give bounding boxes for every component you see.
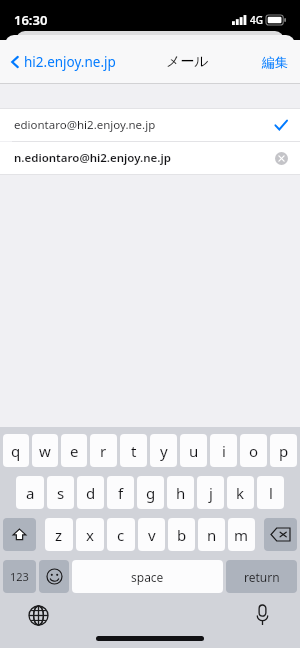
button[interactable]: u: [180, 434, 207, 467]
button[interactable]: t: [120, 434, 147, 467]
button[interactable]: Emoji: [39, 560, 69, 593]
other: Selected: [274, 118, 288, 132]
button[interactable]: i: [210, 434, 237, 467]
staticText: p: [279, 441, 289, 461]
button[interactable]: space: [72, 560, 223, 593]
staticText: u: [189, 441, 199, 461]
staticText: g: [146, 483, 156, 503]
button[interactable]: q: [3, 434, 29, 467]
button[interactable]: y: [150, 434, 177, 467]
button[interactable]: hi2.enjoy.ne.jp: [8, 47, 118, 77]
button[interactable]: Change keyboard language: [24, 601, 52, 629]
button[interactable]: l: [257, 476, 284, 509]
button[interactable]: e: [61, 434, 87, 467]
button[interactable]: d: [77, 476, 104, 509]
button[interactable]: f: [107, 476, 134, 509]
button[interactable]: 123: [3, 560, 36, 593]
staticText: f: [118, 483, 124, 503]
staticText: y: [160, 441, 168, 461]
button[interactable]: Shift: [3, 518, 36, 551]
staticText: n.ediontaro@hi2.enjoy.ne.jp: [14, 150, 171, 166]
staticText: q: [11, 441, 21, 461]
staticText: 編集: [262, 54, 288, 70]
staticText: return: [244, 569, 280, 585]
staticText: j: [209, 483, 213, 503]
button[interactable]: k: [227, 476, 254, 509]
button[interactable]: n.ediontaro@hi2.enjoy.ne.jp: [0, 142, 300, 174]
button[interactable]: v: [138, 518, 165, 551]
button[interactable]: Clear: [275, 152, 288, 165]
staticText: i: [222, 441, 226, 461]
button[interactable]: h: [167, 476, 194, 509]
button[interactable]: Backspace: [264, 518, 297, 551]
staticText: ediontaro@hi2.enjoy.ne.jp: [14, 117, 156, 133]
staticText: d: [86, 483, 96, 503]
button[interactable]: b: [168, 518, 195, 551]
button[interactable]: a: [16, 476, 44, 509]
button[interactable]: m: [228, 518, 255, 551]
staticText: space: [131, 569, 164, 585]
staticText: b: [177, 525, 187, 545]
staticText: o: [249, 441, 259, 461]
button[interactable]: n: [198, 518, 225, 551]
staticText: s: [57, 483, 65, 503]
button[interactable]: o: [240, 434, 267, 467]
staticText: a: [26, 483, 35, 503]
staticText: k: [236, 483, 245, 503]
staticText: w: [39, 441, 51, 461]
staticText: l: [269, 483, 273, 503]
button[interactable]: c: [107, 518, 135, 551]
staticText: t: [131, 441, 137, 461]
staticText: 4G: [250, 13, 263, 27]
staticText: n: [207, 525, 217, 545]
staticText: m: [234, 525, 249, 545]
button[interactable]: g: [137, 476, 164, 509]
button[interactable]: ediontaro@hi2.enjoy.ne.jp: [0, 109, 300, 141]
button[interactable]: p: [270, 434, 297, 467]
staticText: メール: [166, 53, 209, 71]
button[interactable]: s: [47, 476, 74, 509]
button[interactable]: z: [45, 518, 73, 551]
staticText: c: [117, 525, 125, 545]
staticText: r: [100, 441, 107, 461]
button[interactable]: 編集: [258, 48, 292, 76]
staticText: x: [86, 525, 94, 545]
button[interactable]: w: [32, 434, 58, 467]
staticText: z: [55, 525, 63, 545]
staticText: 16:30: [14, 11, 48, 29]
button[interactable]: r: [90, 434, 117, 467]
button[interactable]: return: [226, 560, 297, 593]
staticText: 123: [10, 569, 29, 584]
staticText: v: [148, 525, 156, 545]
button[interactable]: Dictation: [248, 601, 276, 629]
button[interactable]: x: [76, 518, 104, 551]
staticText: e: [70, 441, 79, 461]
button[interactable]: j: [197, 476, 224, 509]
staticText: hi2.enjoy.ne.jp: [24, 53, 116, 71]
staticText: h: [176, 483, 186, 503]
